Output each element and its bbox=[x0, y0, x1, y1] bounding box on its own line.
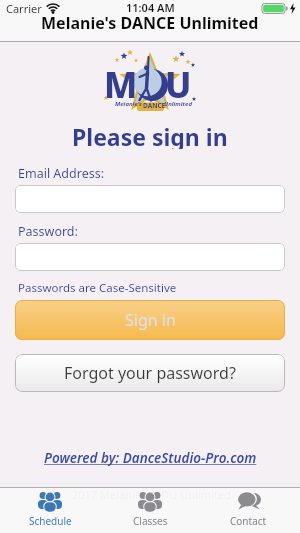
staticText: 2017 Melanie's MDU Unlimited bbox=[72, 487, 231, 502]
staticText: Password: bbox=[18, 223, 78, 240]
staticText: DANCE bbox=[143, 101, 166, 110]
staticText: Please sign in bbox=[72, 121, 228, 149]
staticText: M bbox=[104, 61, 138, 109]
staticText: Passwords are Case-Sensitive bbox=[18, 280, 177, 296]
button[interactable] bbox=[15, 243, 285, 271]
staticText: Contact bbox=[230, 514, 267, 528]
button[interactable]: Schedule bbox=[0, 487, 100, 533]
staticText: Forgot your password? bbox=[64, 362, 236, 384]
button[interactable]: Forgot your password? bbox=[15, 354, 285, 392]
staticText: Sign in bbox=[125, 309, 176, 331]
button[interactable]: Contact bbox=[198, 487, 298, 533]
staticText: Unlimited bbox=[164, 100, 192, 108]
staticText: Carrier bbox=[6, 1, 42, 16]
button[interactable] bbox=[15, 185, 285, 213]
staticText: 11:04 AM bbox=[126, 0, 175, 14]
staticText: Powered by: DanceStudio-Pro.com bbox=[44, 449, 257, 467]
staticText: Classes bbox=[133, 514, 168, 528]
staticText: Email Address: bbox=[18, 165, 105, 182]
staticText: U bbox=[165, 61, 192, 109]
staticText: Schedule bbox=[29, 514, 72, 528]
button[interactable]: Powered by: DanceStudio-Pro.com bbox=[0, 449, 300, 467]
button[interactable]: Sign in bbox=[15, 300, 285, 340]
staticText: Melanie's DANCE Unlimited bbox=[41, 12, 259, 32]
staticText: Melanie's bbox=[115, 100, 142, 108]
button[interactable]: Classes bbox=[100, 487, 200, 533]
